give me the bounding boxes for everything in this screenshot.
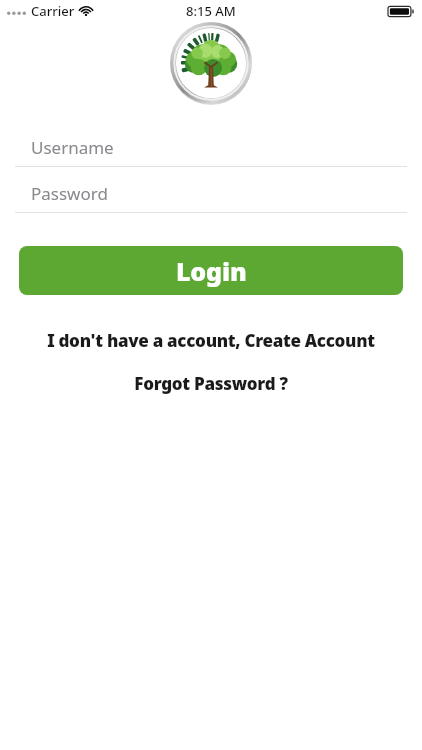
staticText: Username xyxy=(31,136,114,159)
button[interactable]: Password field xyxy=(0,174,422,213)
staticText: 8:15 AM xyxy=(186,2,236,20)
staticText: Forgot Password ? xyxy=(134,372,288,395)
staticText: Login xyxy=(176,254,247,288)
staticText: I don't have a account, Create Account xyxy=(47,329,375,352)
button[interactable]: Forgot Password ? xyxy=(0,367,422,399)
button[interactable]: Username field xyxy=(0,128,422,167)
button[interactable]: Login xyxy=(19,246,403,295)
staticText: Password xyxy=(31,182,108,205)
staticText: Carrier xyxy=(31,2,75,20)
button[interactable]: I don't have a account, Create Account xyxy=(0,324,422,356)
